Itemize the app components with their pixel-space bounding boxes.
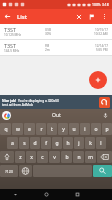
button[interactable]: Add [89,71,107,89]
button[interactable]: j [74,137,84,149]
staticText: T3ST [4,26,17,33]
button[interactable]: y [58,123,68,135]
button[interactable]: Home [31,189,62,200]
button[interactable]: q [0,123,11,135]
staticText: o [94,126,98,133]
button[interactable]: ?123 [0,165,18,177]
button[interactable]: More options [98,10,111,23]
staticText: v [53,154,56,161]
button[interactable]: i [80,123,90,135]
button[interactable]: Back [0,189,31,200]
staticText: b [65,154,69,161]
button[interactable]: Back [0,9,15,24]
button[interactable]: n [73,151,84,163]
staticText: ?123 [5,169,13,174]
staticText: test ad from AdMob [2,102,33,106]
button[interactable]: z [15,151,25,163]
button[interactable]: h [63,137,73,149]
button[interactable]: x [26,151,36,163]
button[interactable]: r [36,123,46,135]
button[interactable]: b [61,151,72,163]
button[interactable]: Close [72,10,85,23]
staticText: 10/15/17 [95,28,108,32]
staticText: FM [45,44,50,48]
staticText: g [55,140,59,147]
button[interactable]: Flag [85,10,98,23]
staticText: t [51,126,53,133]
staticText: h [66,140,70,147]
staticText: 10.125 MHz [4,33,22,37]
button[interactable]: Search [93,165,112,177]
staticText: p [105,126,109,133]
button[interactable]: k [85,137,95,149]
button[interactable]: a [7,137,18,149]
button[interactable]: Shift [0,151,14,163]
staticText: 12/14/17 [95,44,108,48]
button[interactable]: l [96,137,106,149]
button[interactable]: Recents [62,189,93,200]
button[interactable]: c [37,151,48,163]
button[interactable]: w [12,123,23,135]
staticText: List [17,13,28,21]
staticText: f [45,140,47,147]
staticText: u [72,126,76,133]
staticText: 5:55 PM [96,48,108,52]
staticText: r [40,126,43,133]
staticText: e [28,126,31,133]
staticText: m [88,154,93,161]
staticText: USB [45,28,51,32]
staticText: x [30,154,33,161]
button[interactable]: T3ST [0,40,112,55]
staticText: l [100,140,102,147]
staticText: 144.5 MHz [4,49,20,53]
staticText: w [16,126,20,133]
staticText: q [4,126,8,133]
staticText: Out [52,112,61,119]
button[interactable]: v [49,151,60,163]
staticText: 2m [45,48,50,52]
staticText: k [89,140,92,147]
button[interactable]: Change language [19,165,32,177]
button[interactable]: T3ST [0,24,112,39]
staticText: n [77,154,81,161]
button[interactable]: Backspace [97,151,112,163]
button[interactable]: Google [2,111,11,120]
button[interactable]: o [91,123,101,135]
button[interactable]: p [102,123,112,135]
staticText: 3:18 [102,2,109,7]
button[interactable]: Nice job! [0,95,112,109]
staticText: i [84,126,86,133]
staticText: a [11,140,14,147]
button[interactable]: s [19,137,29,149]
staticText: j [78,140,80,147]
button[interactable]: Voice input [101,111,110,120]
staticText: 10:32 AM [94,32,108,36]
button[interactable]: m [85,151,96,163]
button[interactable]: g [52,137,62,149]
button[interactable]: d [30,137,40,149]
staticText: c [41,154,44,161]
button[interactable]: u [69,123,79,135]
staticText: s [23,140,26,147]
button[interactable]: t [47,123,57,135]
staticText: T3ST [4,42,17,49]
staticText: z [19,154,22,161]
staticText: 30% [45,32,52,36]
staticText: 100% [92,2,101,7]
button[interactable]: e [24,123,35,135]
staticText: y [62,126,65,133]
button[interactable]: f [41,137,51,149]
staticText: Nice job! [2,98,18,102]
staticText: You're displaying a 320x50 [18,98,59,102]
staticText: d [33,140,37,147]
